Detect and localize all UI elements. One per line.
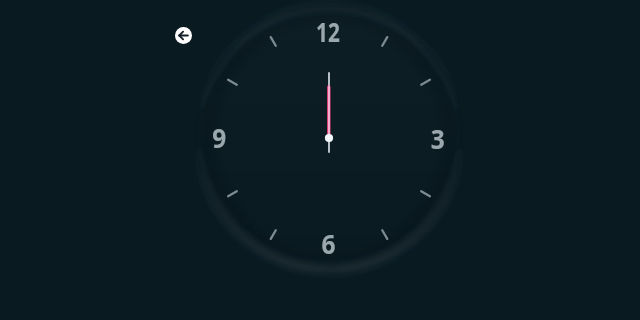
button[interactable]: Back bbox=[175, 27, 192, 44]
